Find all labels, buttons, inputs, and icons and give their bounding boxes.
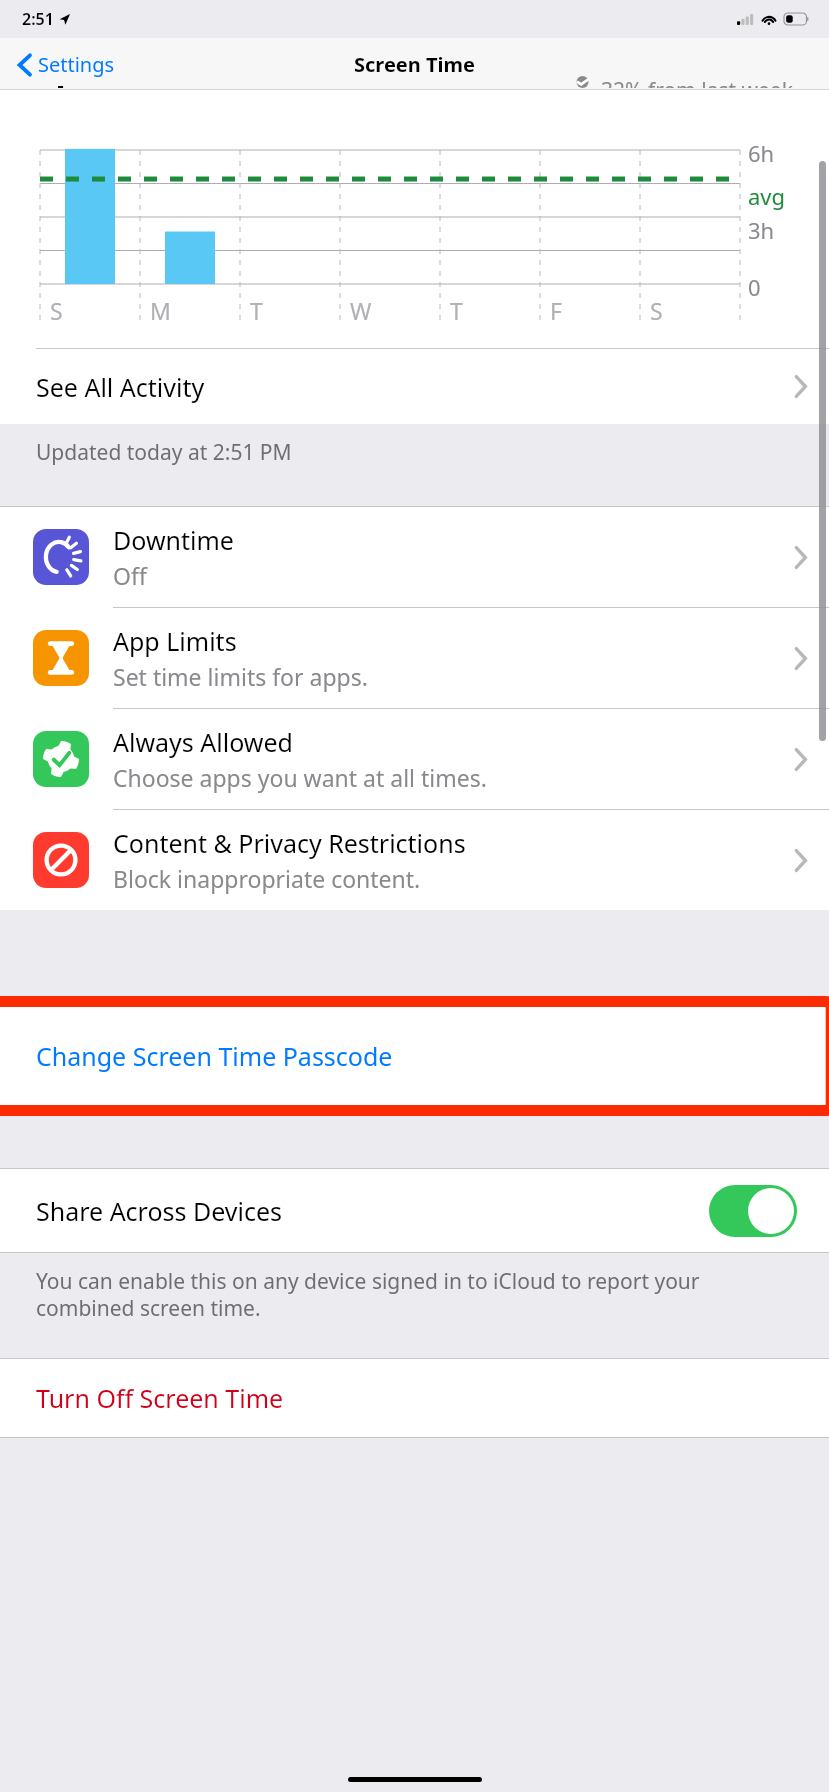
button[interactable]: Downtime [0, 507, 829, 607]
staticText: Change Screen Time Passcode [36, 1039, 393, 1073]
button[interactable]: Share Across Devices toggle, on [709, 1185, 797, 1237]
staticText: Off [113, 560, 147, 591]
staticText: F [550, 295, 562, 326]
staticText: avg [748, 181, 786, 211]
staticText: 32% from last week [601, 76, 793, 88]
staticText: Turn Off Screen Time [36, 1381, 284, 1415]
staticText: Content & Privacy Restrictions [113, 826, 466, 860]
button[interactable]: Share Across Devices [0, 1169, 829, 1252]
staticText: T [450, 295, 463, 326]
staticText: Always Allowed [113, 725, 293, 759]
staticText: 0 [748, 272, 761, 302]
staticText: T [250, 295, 263, 326]
staticText: Settings [38, 51, 115, 78]
button[interactable]: Settings [10, 45, 123, 84]
staticText: Set time limits for apps. [113, 661, 368, 692]
button[interactable]: Always Allowed [0, 709, 829, 809]
button[interactable]: App Limits [0, 608, 829, 708]
staticText: S [50, 295, 63, 326]
staticText: 4h 44m [36, 76, 159, 88]
staticText: App Limits [113, 624, 237, 658]
staticText: Screen Time [354, 51, 475, 78]
staticText: Choose apps you want at all times. [113, 762, 487, 793]
staticText: Block inappropriate content. [113, 863, 421, 894]
staticText: 2:51 [22, 8, 54, 30]
staticText: M [150, 295, 171, 326]
staticText: Downtime [113, 523, 234, 557]
staticText: 3h [748, 215, 775, 245]
staticText: See All Activity [36, 370, 205, 404]
staticText: S [650, 295, 663, 326]
staticText: 6h [748, 138, 775, 168]
staticText: Updated today at 2:51 PM [36, 438, 292, 467]
staticText: Share Across Devices [36, 1194, 283, 1228]
button[interactable]: See All Activity [0, 349, 829, 424]
button[interactable]: Turn Off Screen Time [0, 1359, 829, 1437]
staticText: W [350, 295, 372, 326]
staticText: You can enable this on any device signed… [36, 1267, 799, 1322]
button[interactable]: Change Screen Time Passcode [0, 997, 829, 1115]
button[interactable]: Content & Privacy Restrictions [0, 810, 829, 910]
